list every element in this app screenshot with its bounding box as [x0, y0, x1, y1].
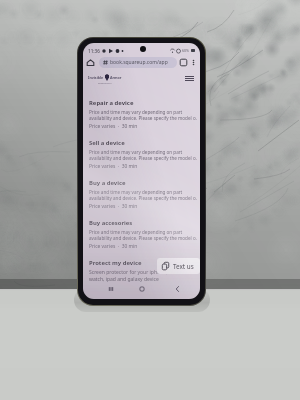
button[interactable]: Home	[136, 283, 148, 295]
button[interactable]: Back	[171, 283, 183, 295]
button[interactable]: Repair a device	[83, 96, 200, 136]
button[interactable]: Protect my device	[83, 256, 200, 283]
staticText: Invisible	[88, 75, 104, 80]
staticText: Price and time may vary depending on par…	[89, 189, 183, 195]
button[interactable]: Buy accesories	[83, 216, 200, 256]
button[interactable]: Tabs	[179, 58, 188, 67]
staticText: availability and device. Please specify …	[89, 195, 197, 201]
button[interactable]: Sell a device	[83, 136, 200, 176]
button[interactable]: book.squareup.com/app	[99, 57, 177, 68]
staticText: Buy accesories	[89, 219, 133, 227]
staticText: 60%	[182, 48, 190, 53]
staticText: book.squareup.com/app	[110, 59, 168, 66]
staticText: Armor	[110, 75, 122, 80]
staticText: Price varies · 30 min	[89, 203, 138, 210]
staticText: availability and device. Please specify …	[89, 155, 197, 161]
staticText: 11:36	[88, 48, 100, 54]
staticText: Price and time may vary depending on par…	[89, 229, 183, 235]
staticText: PROTECTION	[98, 82, 112, 85]
staticText: Buy a device	[89, 179, 126, 187]
button[interactable]: Text us	[157, 258, 200, 274]
staticText: availability and device. Please specify …	[89, 235, 197, 241]
button[interactable]: More options	[189, 58, 198, 67]
staticText: Repair a device	[89, 99, 134, 107]
staticText: Protect my device	[89, 259, 142, 267]
button[interactable]: Home	[85, 57, 96, 68]
staticText: availability and device. Please specify …	[89, 115, 197, 121]
button[interactable]: Menu	[184, 73, 195, 84]
staticText: Price varies · 30 min	[89, 123, 138, 130]
staticText: Sell a device	[89, 139, 125, 147]
staticText: Price varies · 30 min	[89, 243, 138, 250]
staticText: Text us	[173, 262, 194, 270]
button[interactable]: Buy a device	[83, 176, 200, 216]
staticText: Price and time may vary depending on par…	[89, 109, 183, 115]
staticText: Price and time may vary depending on par…	[89, 149, 183, 155]
staticText: Screen protector for your iphone,	[89, 269, 168, 276]
button[interactable]: Invisible	[88, 74, 122, 85]
staticText: watch, ipad and galaxy device	[89, 276, 159, 283]
button[interactable]: Recent apps	[105, 283, 117, 295]
staticText: Price varies · 30 min	[89, 163, 138, 170]
